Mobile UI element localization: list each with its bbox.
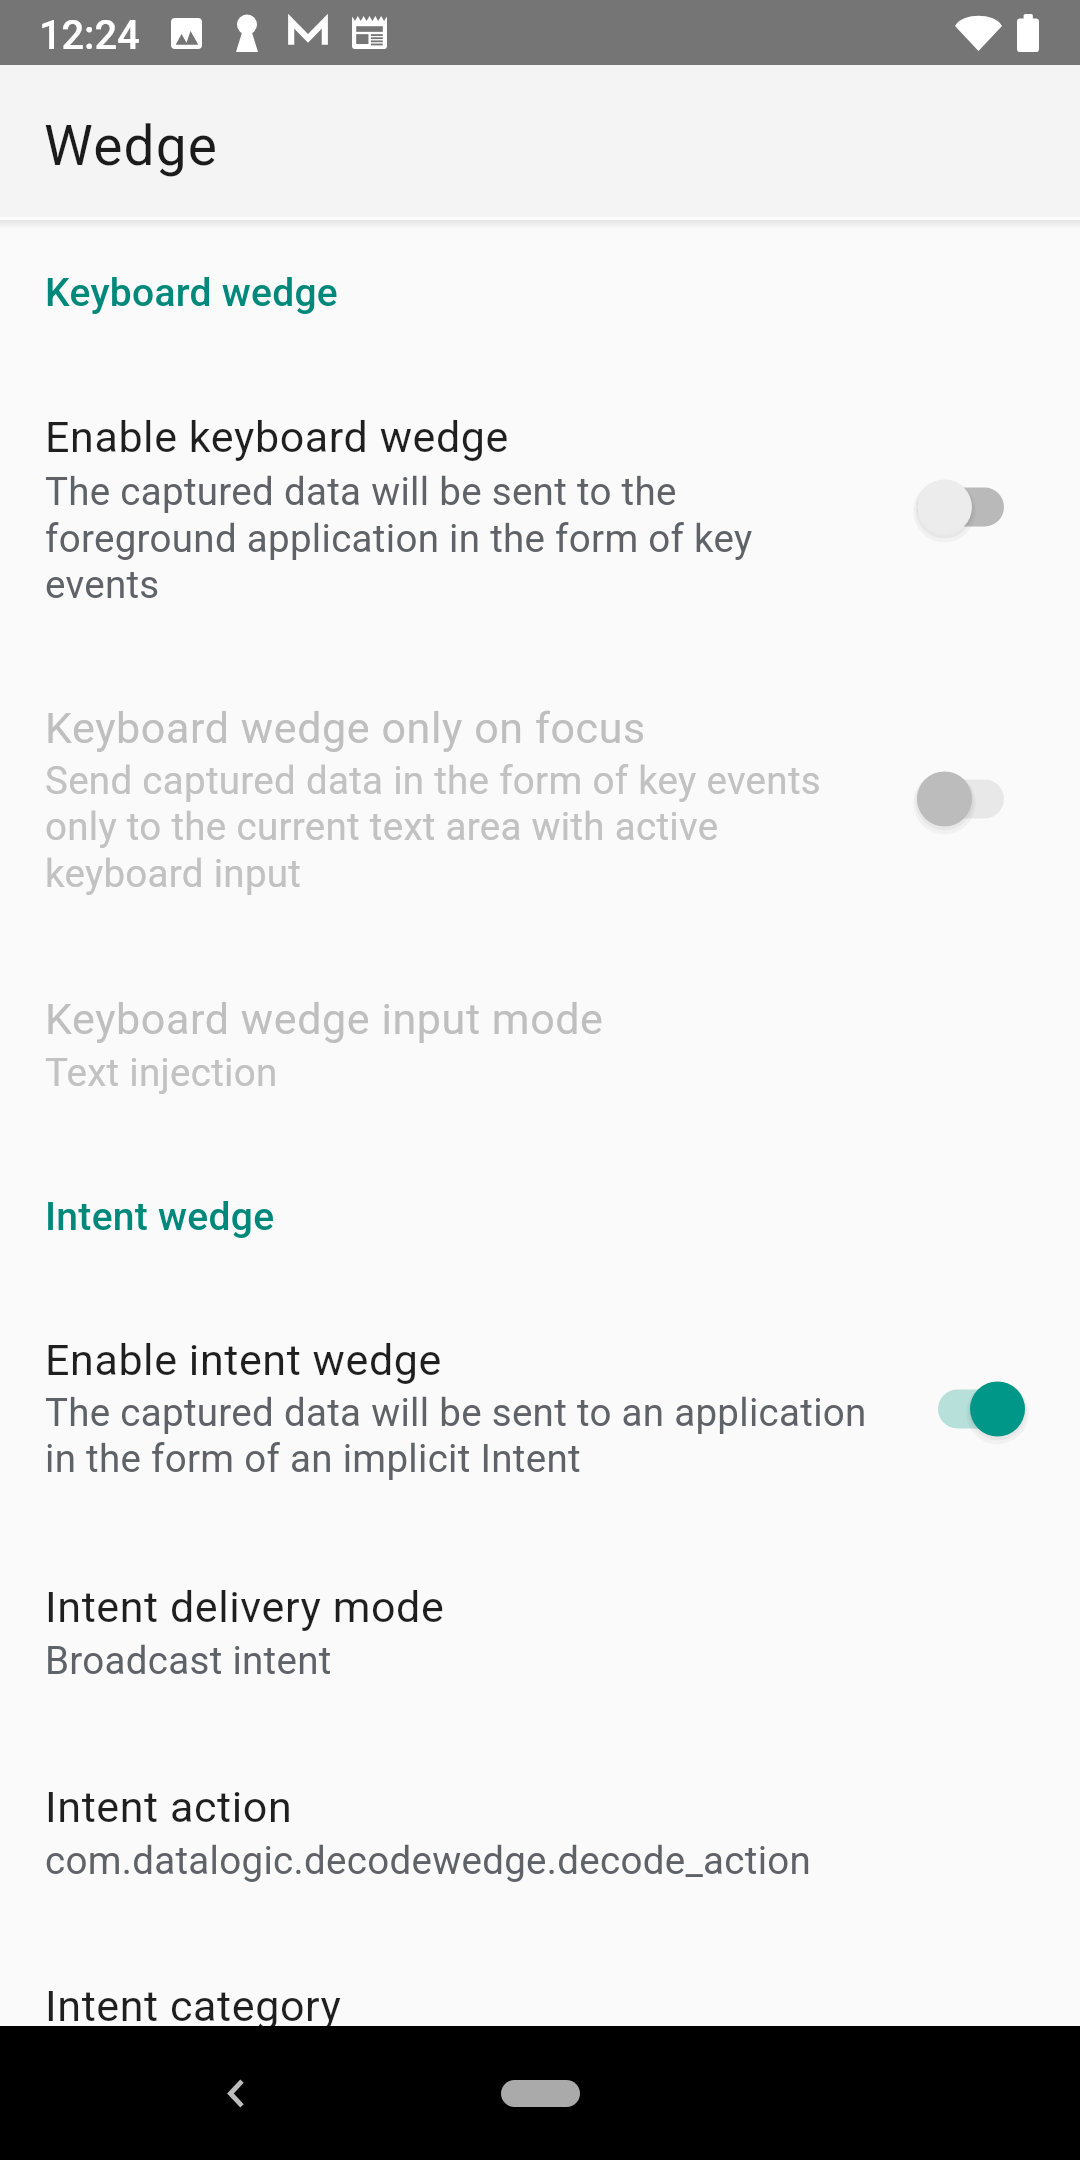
- staticText: Intent action: [45, 1782, 1080, 1832]
- staticText: Keyboard wedge: [45, 270, 1080, 316]
- button[interactable]: Keyboard wedge input mode: [0, 960, 1080, 1120]
- button[interactable]: Intent category: [0, 1948, 1080, 2026]
- staticText: Send captured data in the form of key ev…: [45, 758, 1080, 803]
- staticText: Keyboard wedge only on focus: [45, 703, 1080, 753]
- button[interactable]: Enable intent wedge: [0, 1290, 1080, 1515]
- staticText: Broadcast intent: [45, 1638, 1080, 1683]
- staticText: events: [45, 562, 1080, 607]
- staticText: in the form of an implicit Intent: [45, 1436, 1080, 1481]
- button[interactable]: Toggle switch, off: [907, 761, 1014, 837]
- staticText: Intent wedge: [45, 1194, 1080, 1240]
- button[interactable]: Toggle switch, off: [907, 469, 1014, 545]
- button[interactable]: Intent action: [0, 1748, 1080, 1908]
- button[interactable]: Back: [194, 2051, 278, 2135]
- staticText: Intent delivery mode: [45, 1582, 1080, 1632]
- button[interactable]: Keyboard wedge only on focus: [0, 658, 1080, 930]
- staticText: Wedge: [44, 114, 1080, 178]
- staticText: Intent category: [45, 1981, 1080, 2031]
- staticText: keyboard input: [45, 851, 1080, 896]
- staticText: foreground application in the form of ke…: [45, 516, 1080, 561]
- staticText: Enable intent wedge: [45, 1335, 1080, 1385]
- staticText: Text injection: [45, 1050, 1080, 1095]
- staticText: The captured data will be sent to an app…: [45, 1390, 1080, 1435]
- button[interactable]: Intent delivery mode: [0, 1548, 1080, 1708]
- button[interactable]: Enable keyboard wedge: [0, 366, 1080, 638]
- button[interactable]: Toggle switch, on: [928, 1371, 1035, 1447]
- staticText: The captured data will be sent to the: [45, 469, 1080, 514]
- staticText: com.datalogic.decodewedge.decode_action: [45, 1838, 1080, 1883]
- staticText: Enable keyboard wedge: [45, 412, 1080, 462]
- staticText: only to the current text area with activ…: [45, 804, 1080, 849]
- staticText: 12:24: [39, 12, 1080, 59]
- staticText: Keyboard wedge input mode: [45, 994, 1080, 1044]
- button[interactable]: Home: [501, 2080, 580, 2107]
